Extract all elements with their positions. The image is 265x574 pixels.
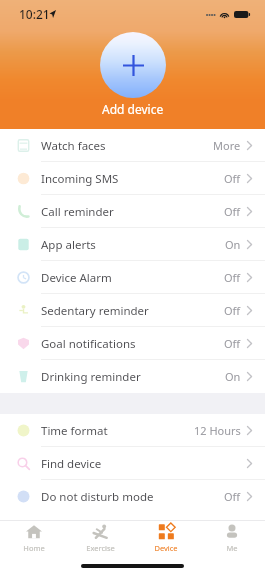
button[interactable]: Drinking reminder (0, 360, 265, 393)
staticText: Goal notifications (41, 336, 136, 352)
button[interactable]: Find device (0, 447, 265, 480)
staticText: Device (154, 543, 178, 553)
staticText: Off (224, 489, 241, 504)
staticText: Find device (41, 456, 102, 472)
staticText: Incoming SMS (41, 171, 119, 187)
button[interactable]: Exercise (67, 521, 133, 555)
button[interactable]: Incoming SMS (0, 162, 265, 195)
button[interactable]: Time format (0, 414, 265, 447)
staticText: Off (224, 270, 241, 285)
staticText: Off (224, 336, 241, 351)
button[interactable]: Device (133, 521, 199, 555)
staticText: On (225, 369, 241, 384)
button[interactable]: Me (199, 521, 265, 555)
staticText: Sedentary reminder (41, 303, 149, 319)
staticText: Off (224, 204, 241, 219)
button[interactable]: Home (0, 521, 67, 555)
staticText: Drinking reminder (41, 369, 141, 385)
button[interactable]: App alerts (0, 228, 265, 261)
staticText: Home (23, 543, 45, 553)
button[interactable]: Add device (100, 32, 166, 98)
staticText: On (225, 237, 241, 252)
staticText: Time format (41, 423, 108, 439)
staticText: Do not disturb mode (41, 489, 154, 505)
staticText: Add device (102, 101, 164, 117)
staticText: 12 Hours (194, 423, 241, 438)
button[interactable]: Goal notifications (0, 327, 265, 360)
staticText: Off (224, 171, 241, 186)
button[interactable]: Sedentary reminder (0, 294, 265, 327)
button[interactable]: Watch faces (0, 129, 265, 162)
staticText: Call reminder (41, 204, 114, 220)
button[interactable]: Device Alarm (0, 261, 265, 294)
staticText: Exercise (86, 543, 115, 553)
staticText: 10:21 (19, 6, 50, 22)
staticText: More (213, 138, 241, 153)
staticText: Off (224, 303, 241, 318)
button[interactable]: Call reminder (0, 195, 265, 228)
staticText: Watch faces (41, 138, 106, 154)
staticText: App alerts (41, 237, 96, 253)
staticText: Device Alarm (41, 270, 112, 286)
staticText: Me (226, 543, 238, 553)
button[interactable]: Do not disturb mode (0, 480, 265, 513)
